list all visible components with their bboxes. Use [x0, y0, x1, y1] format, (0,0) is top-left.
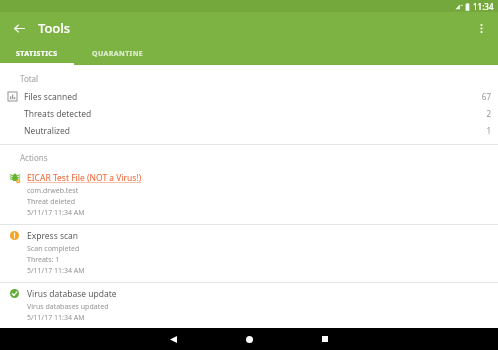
staticText: 5/11/17 11:34 AM	[27, 313, 85, 323]
button[interactable]: EICAR Test File (NOT a Virus!)	[0, 167, 498, 224]
staticText: Threats detected	[24, 108, 486, 120]
staticText: 5/11/17 11:34 AM	[27, 208, 85, 218]
staticText: Virus databases updated	[27, 302, 109, 312]
button[interactable]: STATISTICS	[0, 43, 74, 65]
staticText: Tools	[38, 19, 71, 37]
staticText: Threat deleted	[27, 197, 75, 207]
staticText: Total	[20, 73, 39, 84]
staticText: 11:34	[473, 1, 494, 12]
staticText: EICAR Test File (NOT a Virus!)	[27, 172, 142, 184]
button[interactable]: Back	[6, 15, 32, 41]
button[interactable]: More options	[468, 15, 494, 41]
staticText: STATISTICS	[16, 49, 58, 59]
staticText: Files scanned	[24, 91, 481, 103]
button[interactable]: Files scanned	[0, 88, 498, 105]
button[interactable]: Threats detected	[0, 105, 498, 122]
button[interactable]: Recent apps	[312, 328, 338, 350]
button[interactable]: QUARANTINE	[74, 43, 162, 65]
staticText: QUARANTINE	[92, 49, 144, 59]
button[interactable]: Neutralized	[0, 122, 498, 139]
button[interactable]: Home	[236, 328, 262, 350]
staticText: Express scan	[27, 230, 79, 242]
staticText: Scan completed	[27, 244, 80, 254]
staticText: 67	[481, 91, 491, 102]
staticText: 2	[486, 108, 491, 119]
button[interactable]: Express scan	[0, 225, 498, 282]
button[interactable]: Back	[160, 328, 186, 350]
staticText: Neutralized	[24, 125, 486, 137]
staticText: Threats: 1	[27, 255, 60, 265]
staticText: 5/11/17 11:34 AM	[27, 266, 85, 276]
staticText: com.drweb.test	[27, 186, 79, 196]
staticText: Actions	[20, 152, 48, 163]
staticText: 1	[486, 125, 491, 136]
button[interactable]: Virus database update	[0, 283, 498, 328]
staticText: Virus database update	[27, 288, 117, 300]
